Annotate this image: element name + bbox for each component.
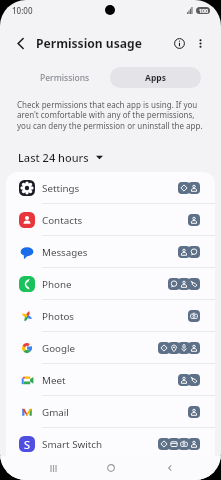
- button[interactable]: Photos: [6, 300, 215, 332]
- staticText: Contacts: [42, 214, 188, 227]
- staticText: Gmail: [42, 406, 188, 419]
- staticText: Smart Switch: [42, 438, 158, 451]
- button[interactable]: Contacts: [6, 204, 215, 236]
- staticText: 100: [199, 7, 208, 14]
- button[interactable]: More options: [191, 34, 209, 52]
- button[interactable]: Messages: [6, 236, 215, 268]
- button[interactable]: Phone: [6, 268, 215, 300]
- staticText: Phone: [42, 278, 168, 291]
- staticText: Settings: [42, 182, 178, 195]
- button[interactable]: Google: [6, 332, 215, 364]
- button[interactable]: Last 24 hours: [14, 147, 107, 168]
- staticText: Permission usage: [36, 35, 142, 51]
- button[interactable]: S: [6, 428, 215, 460]
- staticText: Last 24 hours: [18, 150, 89, 165]
- button[interactable]: Back: [158, 456, 182, 480]
- staticText: Apps: [145, 72, 166, 84]
- staticText: Check permissions that each app is using…: [17, 99, 206, 132]
- staticText: Permissions: [40, 72, 90, 84]
- button[interactable]: Information: [170, 34, 189, 53]
- button[interactable]: Permissions: [19, 67, 110, 88]
- staticText: Photos: [42, 310, 188, 323]
- staticText: Google: [42, 342, 158, 355]
- button[interactable]: Meet: [6, 364, 215, 396]
- button[interactable]: Home: [99, 456, 123, 480]
- button[interactable]: Navigate up: [11, 34, 30, 53]
- button[interactable]: Settings: [6, 172, 215, 204]
- staticText: S: [24, 437, 30, 452]
- staticText: 10:00: [12, 5, 33, 16]
- staticText: Meet: [42, 374, 178, 387]
- button[interactable]: Gmail: [6, 396, 215, 428]
- button[interactable]: Recent apps: [42, 457, 65, 480]
- staticText: Messages: [42, 246, 178, 259]
- button[interactable]: Apps: [110, 67, 201, 88]
